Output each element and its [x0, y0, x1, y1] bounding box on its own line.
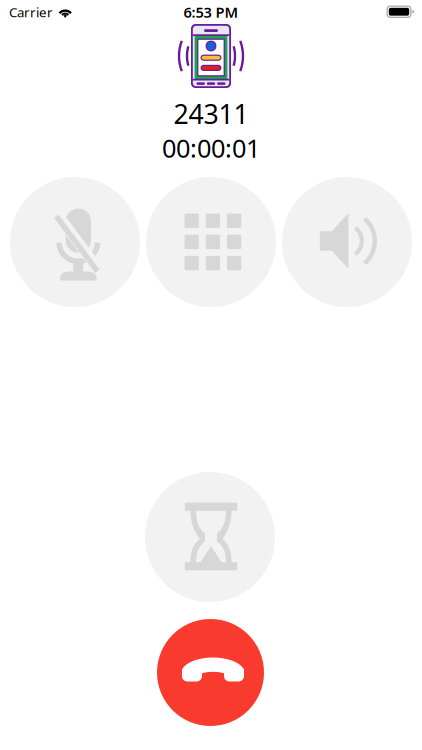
button[interactable]: Keypad: [146, 177, 276, 307]
button[interactable]: Hold: [145, 472, 275, 602]
button[interactable]: Mute: [10, 177, 140, 307]
button[interactable]: Speaker: [282, 177, 412, 307]
staticText: Carrier: [9, 3, 53, 21]
button[interactable]: End call: [157, 619, 264, 726]
staticText: 24311: [173, 96, 248, 131]
staticText: 00:00:01: [162, 131, 260, 165]
staticText: 6:53 PM: [183, 2, 238, 22]
